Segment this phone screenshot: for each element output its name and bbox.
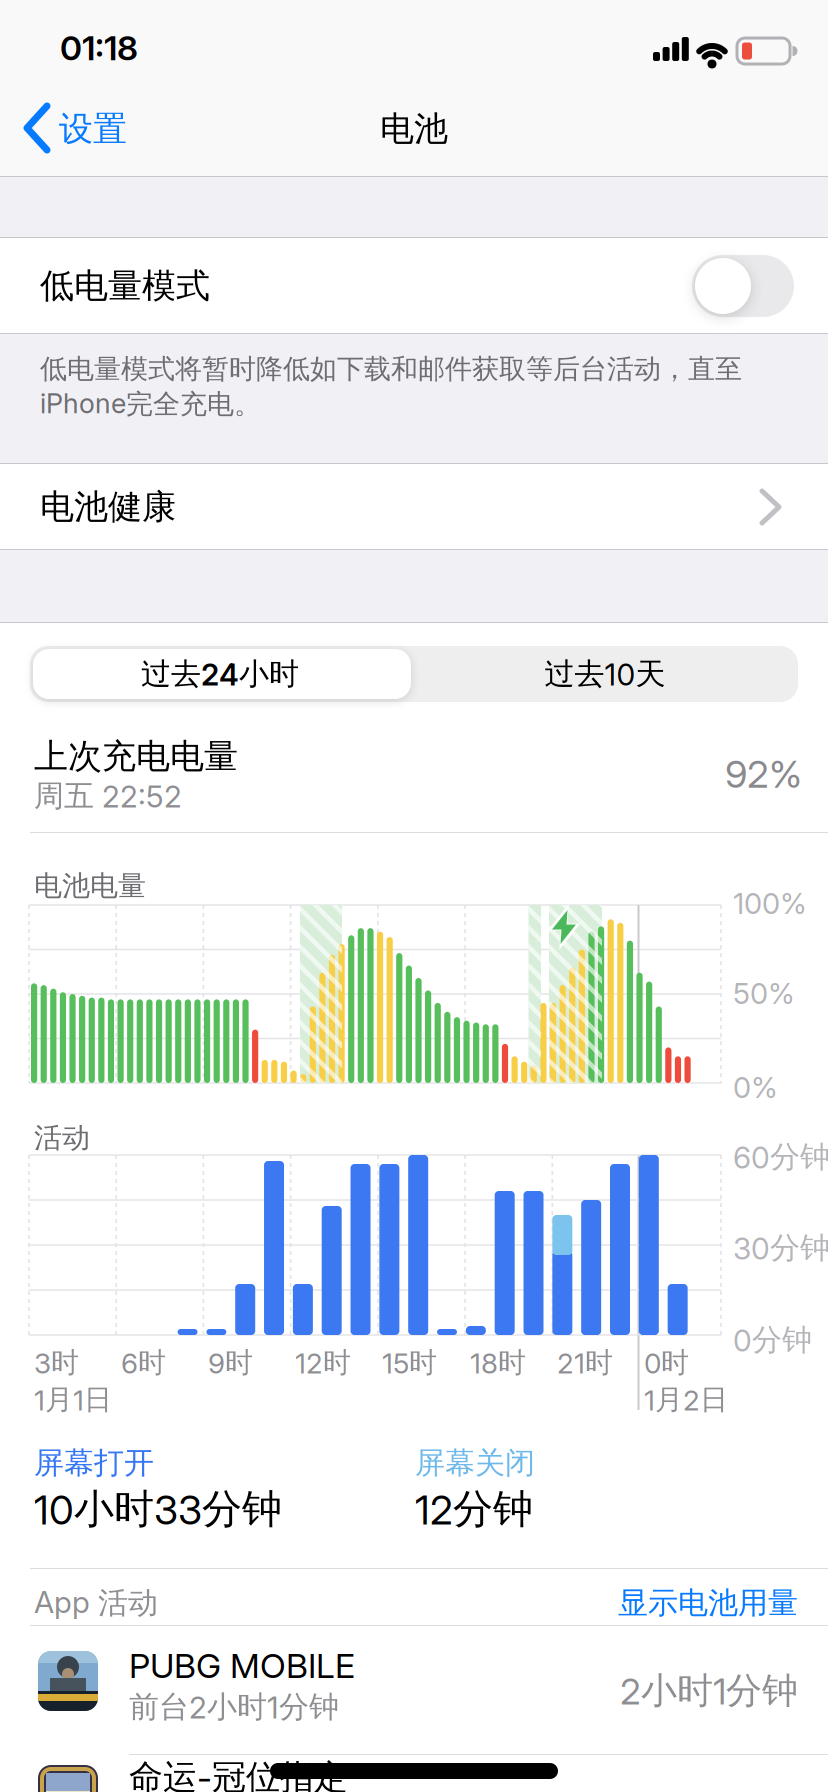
staticText: 21时 <box>557 1345 613 1380</box>
staticText: 0% <box>733 1070 778 1105</box>
staticText: 电池 <box>380 108 448 150</box>
button[interactable]: 命运-冠位指定 <box>0 1755 828 1792</box>
staticText: PUBG MOBILE <box>129 1645 355 1686</box>
staticText: 0分钟 <box>733 1321 812 1359</box>
staticText: 设置 <box>59 108 127 150</box>
button[interactable] <box>33 649 411 699</box>
staticText: 15时 <box>382 1345 437 1380</box>
button[interactable]: 过去24小时 <box>30 646 410 702</box>
staticText: iPhone完全充电。 <box>40 387 261 421</box>
staticText: 10小时33分钟 <box>34 1484 282 1534</box>
staticText: 6时 <box>121 1345 166 1380</box>
button[interactable]: 设置 <box>0 88 160 168</box>
staticText: 9时 <box>208 1345 253 1380</box>
staticText: 1月1日 <box>34 1382 112 1417</box>
button[interactable]: PUBG MOBILE <box>0 1625 828 1754</box>
staticText: 12分钟 <box>415 1484 533 1534</box>
staticText: 命运-冠位指定 <box>129 1756 348 1792</box>
staticText: 0时 <box>644 1345 689 1380</box>
button[interactable]: 电池健康 <box>0 464 828 549</box>
button[interactable]: 低电量模式 <box>0 238 828 333</box>
staticText: App 活动 <box>34 1584 158 1622</box>
staticText: 上次充电电量 <box>34 735 238 778</box>
staticText: 显示电池用量 <box>618 1584 798 1622</box>
staticText: 50% <box>733 976 795 1011</box>
staticText: 电池电量 <box>34 868 146 904</box>
staticText: 屏幕打开 <box>34 1444 154 1482</box>
staticText: 100% <box>733 886 807 921</box>
staticText: 3时 <box>34 1345 79 1380</box>
button[interactable]: 过去10天 <box>415 646 795 702</box>
staticText: 过去10天 <box>544 655 665 693</box>
staticText: 92% <box>725 751 802 797</box>
staticText: 2小时1分钟 <box>620 1668 798 1713</box>
staticText: 12时 <box>295 1345 351 1380</box>
staticText: 活动 <box>34 1120 90 1156</box>
staticText: 周五 22:52 <box>34 777 182 815</box>
staticText: 30分钟 <box>733 1229 828 1267</box>
staticText: 60分钟 <box>733 1138 828 1176</box>
staticText: 1月2日 <box>644 1382 728 1417</box>
button[interactable]: 显示电池用量 <box>498 1584 798 1622</box>
staticText: 前台2小时1分钟 <box>129 1688 339 1726</box>
staticText: 屏幕关闭 <box>415 1444 535 1482</box>
staticText: 低电量模式将暂时降低如下载和邮件获取等后台活动，直至 <box>40 352 742 386</box>
staticText: 低电量模式 <box>40 265 210 307</box>
staticText: 18时 <box>470 1345 526 1380</box>
staticText: 电池健康 <box>40 486 176 528</box>
staticText: 01:18 <box>60 27 138 68</box>
staticText: 过去24小时 <box>141 655 299 693</box>
